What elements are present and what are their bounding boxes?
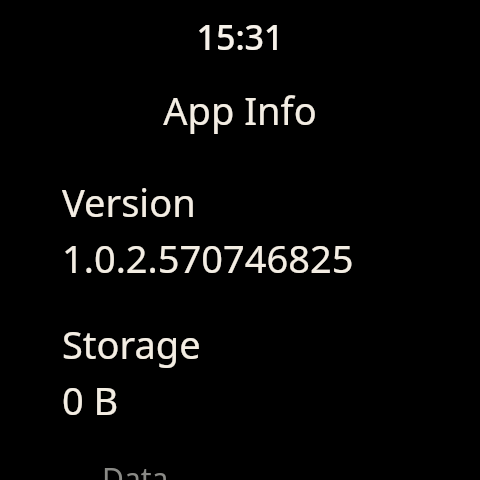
staticText: 1.0.2.570746825 [62, 232, 354, 284]
staticText: 15:31 [0, 14, 480, 60]
staticText: Data [102, 458, 169, 480]
staticText: Storage [62, 318, 201, 370]
button[interactable]: Version [0, 176, 480, 284]
button[interactable]: Data [0, 458, 480, 480]
staticText: 0 B [62, 374, 119, 426]
staticText: Version [62, 176, 196, 228]
staticText: App Info [0, 84, 480, 136]
button[interactable]: Storage [0, 318, 480, 426]
